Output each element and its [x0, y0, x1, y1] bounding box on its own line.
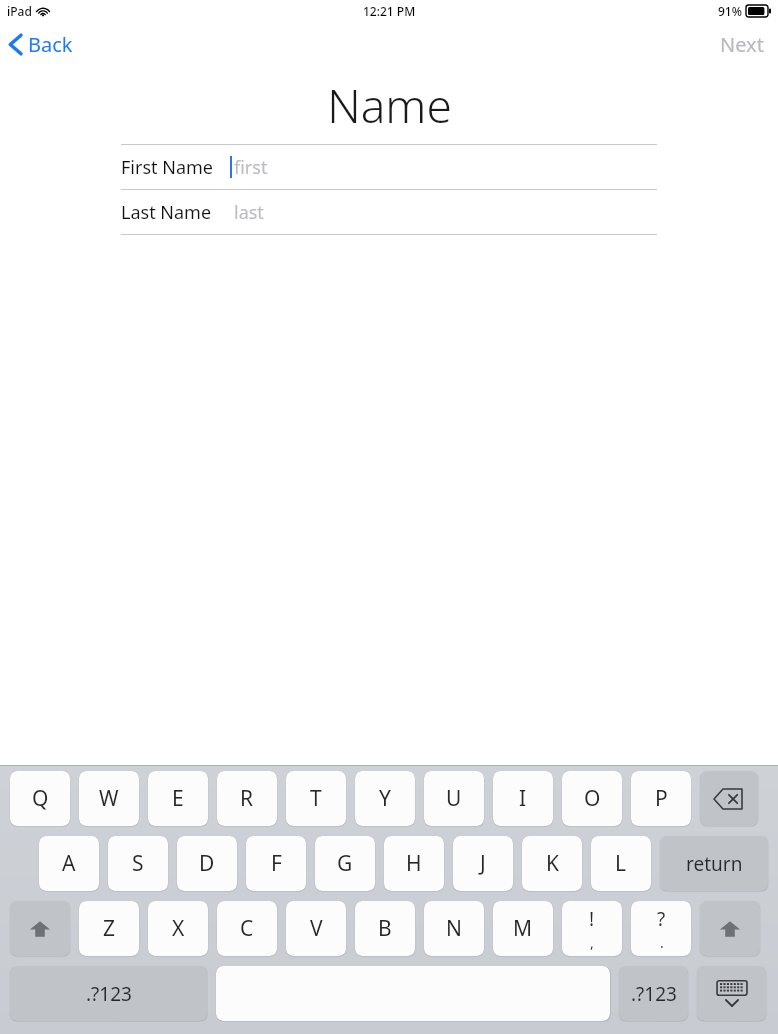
button[interactable]: .?123 [10, 966, 207, 1021]
button[interactable]: R [217, 771, 277, 826]
button[interactable]: First Name [121, 145, 657, 189]
button[interactable]: Y [355, 771, 415, 826]
button[interactable]: K [522, 836, 582, 891]
button[interactable]: V [286, 901, 346, 956]
staticText: O [584, 784, 601, 813]
button[interactable]: S [108, 836, 168, 891]
button[interactable]: U [424, 771, 484, 826]
staticText: N [446, 914, 462, 943]
staticText: J [480, 849, 486, 878]
staticText: L [615, 849, 627, 878]
button[interactable]: O [562, 771, 622, 826]
staticText: T [310, 784, 322, 813]
staticText: R [240, 784, 254, 813]
button[interactable]: H [384, 836, 444, 891]
staticText: .?123 [86, 981, 132, 1007]
staticText: first [234, 155, 268, 180]
staticText: .?123 [631, 981, 677, 1007]
staticText: return [686, 851, 743, 877]
staticText: . [660, 933, 664, 952]
button[interactable]: I [493, 771, 553, 826]
button[interactable]: Z [79, 901, 139, 956]
staticText: K [546, 849, 559, 878]
staticText: Y [379, 784, 391, 813]
staticText: W [99, 784, 119, 813]
staticText: Q [32, 784, 49, 813]
staticText: Z [103, 914, 116, 943]
button[interactable]: Next [720, 22, 764, 66]
staticText: M [513, 914, 533, 943]
staticText: P [655, 784, 668, 813]
staticText: Name [327, 74, 452, 137]
staticText: E [172, 784, 184, 813]
button[interactable]: Back [9, 22, 73, 66]
button[interactable]: Q [10, 771, 70, 826]
staticText: A [62, 849, 76, 878]
button[interactable]: .?123 [619, 966, 688, 1021]
button[interactable]: Shift [10, 901, 70, 956]
button[interactable]: A [39, 836, 99, 891]
staticText: 91% [718, 3, 742, 19]
staticText: D [199, 849, 215, 878]
staticText: H [406, 849, 422, 878]
button[interactable]: D [177, 836, 237, 891]
staticText: U [446, 784, 462, 813]
button[interactable]: T [286, 771, 346, 826]
button[interactable]: X [148, 901, 208, 956]
staticText: V [310, 914, 323, 943]
staticText: 12:21 PM [363, 3, 416, 19]
button[interactable]: C [217, 901, 277, 956]
staticText: S [132, 849, 144, 878]
button[interactable]: Shift [700, 901, 760, 956]
staticText: ! [589, 906, 595, 932]
button[interactable]: Last Name [121, 190, 657, 234]
staticText: X [172, 914, 185, 943]
button[interactable]: F [246, 836, 306, 891]
button[interactable]: M [493, 901, 553, 956]
button[interactable]: ? [631, 901, 691, 956]
button[interactable]: N [424, 901, 484, 956]
button[interactable]: B [355, 901, 415, 956]
button[interactable]: G [315, 836, 375, 891]
staticText: Next [720, 31, 764, 58]
staticText: iPad [7, 3, 32, 19]
button[interactable]: return [660, 836, 768, 891]
button[interactable]: Backspace [700, 771, 758, 826]
staticText: last [234, 200, 264, 225]
staticText: ? [657, 906, 666, 932]
staticText: First Name [121, 155, 213, 180]
staticText: I [519, 784, 527, 813]
staticText: B [378, 914, 392, 943]
button[interactable]: ! [562, 901, 622, 956]
button[interactable]: J [453, 836, 513, 891]
staticText: Last Name [121, 200, 212, 225]
button[interactable]: Hide keyboard [697, 966, 766, 1021]
staticText: F [271, 849, 282, 878]
button[interactable]: L [591, 836, 651, 891]
staticText: Back [28, 31, 73, 58]
staticText: C [240, 914, 254, 943]
staticText: , [590, 933, 594, 952]
staticText: G [337, 849, 353, 878]
button[interactable]: W [79, 771, 139, 826]
button[interactable]: P [631, 771, 691, 826]
button[interactable]: E [148, 771, 208, 826]
